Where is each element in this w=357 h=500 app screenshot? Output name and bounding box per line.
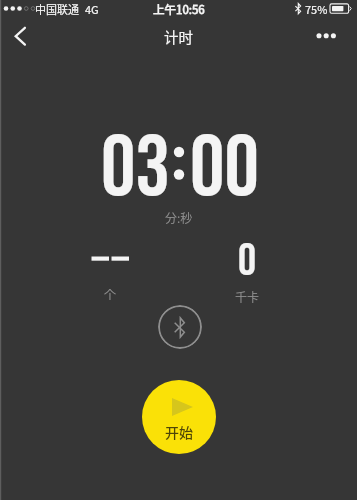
staticText: 开始	[165, 422, 193, 442]
button[interactable]: Bluetooth	[158, 305, 202, 349]
staticText: 分:秒	[165, 209, 193, 226]
staticText: 03	[101, 118, 170, 221]
staticText: 00	[190, 118, 259, 221]
staticText: 0	[238, 234, 257, 288]
button[interactable]: More options	[308, 17, 344, 61]
button[interactable]: Back	[3, 17, 37, 61]
staticText: 个	[104, 285, 117, 302]
staticText: 计时	[164, 26, 193, 47]
staticText: 4G	[85, 1, 99, 17]
staticText: 中国联通	[35, 1, 79, 17]
staticText: 千卡	[235, 288, 260, 305]
staticText: 上午10:56	[153, 1, 205, 18]
button[interactable]: 开始	[142, 380, 216, 454]
staticText: 75%	[305, 1, 328, 17]
